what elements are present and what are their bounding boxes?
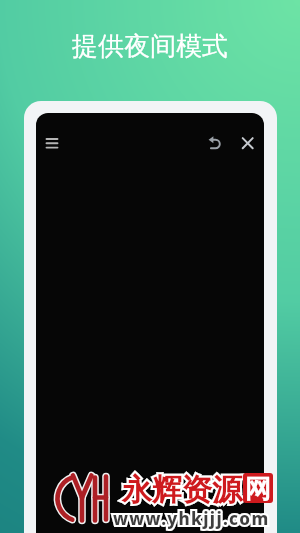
staticText: 永辉资源 xyxy=(122,471,242,509)
staticText: www.yhkjjj.com xyxy=(113,507,270,530)
button[interactable] xyxy=(40,131,64,155)
button[interactable] xyxy=(236,132,260,156)
staticText: www.yhkjjj.com xyxy=(113,507,270,530)
staticText: 网 xyxy=(245,473,271,503)
staticText: 永辉资源 xyxy=(122,471,242,509)
staticText: 提供夜间模式 xyxy=(0,30,300,63)
button[interactable] xyxy=(204,132,228,156)
